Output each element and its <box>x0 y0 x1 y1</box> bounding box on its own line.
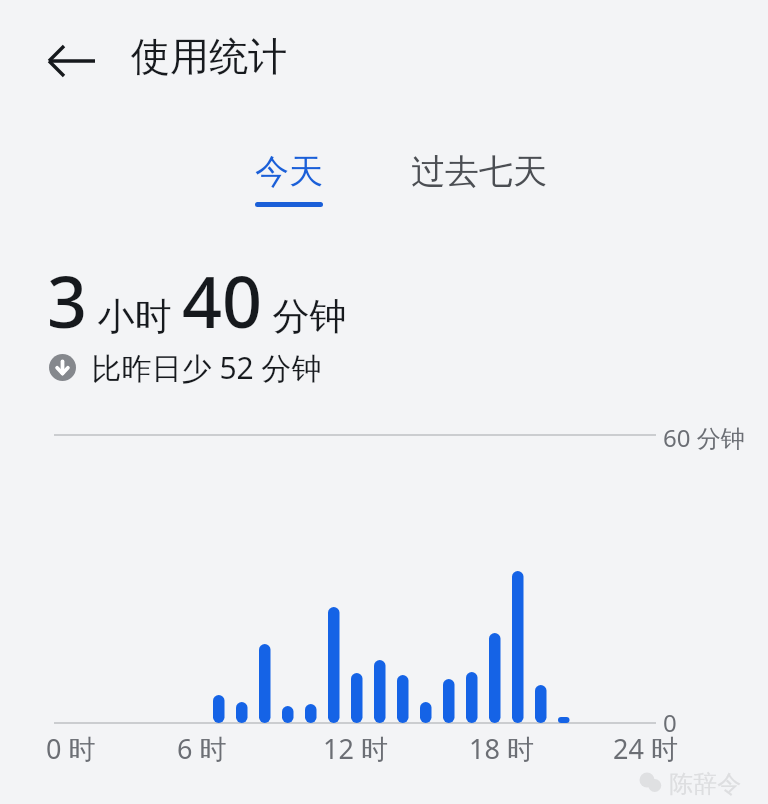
button[interactable]: 过去七天 <box>404 150 554 202</box>
button[interactable]: 今天 <box>232 150 346 212</box>
staticText: 0 <box>663 706 677 739</box>
staticText: 40 <box>182 253 263 348</box>
staticText: 过去七天 <box>411 150 547 193</box>
staticText: 3 <box>47 253 88 348</box>
button[interactable]: Back <box>36 30 108 92</box>
staticText: 使用统计 <box>131 32 287 81</box>
staticText: 24 时 <box>613 730 678 767</box>
staticText: 60 分钟 <box>663 421 745 454</box>
staticText: 小时 <box>88 289 182 340</box>
staticText: 0 时 <box>46 730 96 767</box>
staticText: 陈辞令 <box>663 766 742 799</box>
staticText: 12 时 <box>323 730 388 767</box>
staticText: 今天 <box>255 150 323 193</box>
staticText: 分钟 <box>263 289 347 340</box>
staticText: 比昨日少 52 分钟 <box>76 347 322 388</box>
staticText: 6 时 <box>177 730 227 767</box>
staticText: 18 时 <box>469 730 534 767</box>
